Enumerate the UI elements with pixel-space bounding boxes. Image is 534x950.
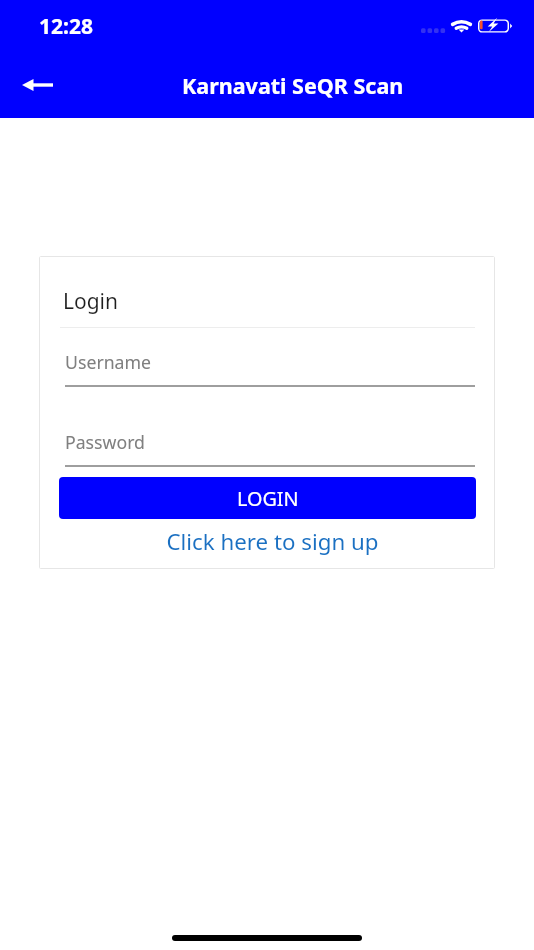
staticText: Login [63,287,119,316]
staticText: 12:28 [39,12,93,41]
button[interactable]: Back [8,62,66,107]
staticText: Password [65,430,146,454]
staticText: Click here to sign up [166,526,379,556]
button[interactable]: Password [60,419,475,468]
button[interactable]: Username [60,339,475,388]
staticText: Karnavati SeQR Scan [182,71,404,100]
button[interactable]: LOGIN [59,477,476,519]
staticText: LOGIN [237,485,299,512]
staticText: Username [65,350,152,374]
button[interactable]: Click here to sign up [40,523,494,559]
